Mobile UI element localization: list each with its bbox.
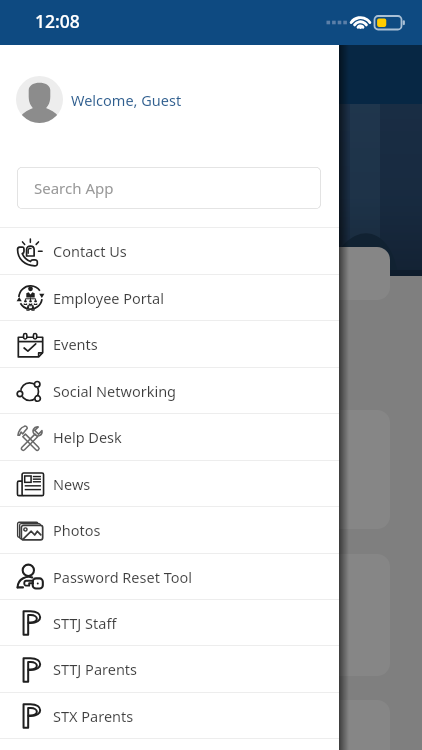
staticText: News	[53, 474, 91, 494]
button[interactable]: STTJ Staff	[0, 600, 339, 645]
button[interactable]: Contact Us	[0, 228, 339, 274]
button[interactable]: STX Parents	[0, 693, 339, 738]
staticText: Contact Us	[53, 241, 127, 261]
staticText: Help Desk	[53, 427, 122, 447]
staticText: Search App	[34, 178, 114, 198]
button[interactable]: STTJ Parents	[0, 646, 339, 692]
staticText: Password Reset Tool	[53, 567, 193, 587]
staticText: STTJ Staff	[53, 613, 117, 633]
staticText: Social Networking	[53, 381, 177, 401]
button[interactable]: Events	[0, 321, 339, 367]
button[interactable]: Social Networking	[0, 368, 339, 413]
staticText: Employee Portal	[53, 288, 164, 308]
button[interactable]: Employee Portal	[0, 275, 339, 320]
staticText: STX Parents	[53, 706, 134, 726]
staticText: News	[288, 628, 327, 648]
button[interactable]: Search App	[17, 167, 321, 209]
button[interactable]: Help Desk	[0, 414, 339, 460]
staticText: Events	[53, 334, 98, 354]
button[interactable]: News	[0, 461, 339, 506]
staticText: 12:08	[35, 9, 80, 33]
staticText: Welcome, Guest	[71, 90, 182, 110]
staticText: STTJ Parents	[53, 659, 138, 679]
button[interactable]: Photos	[0, 507, 339, 553]
staticText: Photos	[53, 520, 101, 540]
button[interactable]: Password Reset Tool	[0, 554, 339, 599]
